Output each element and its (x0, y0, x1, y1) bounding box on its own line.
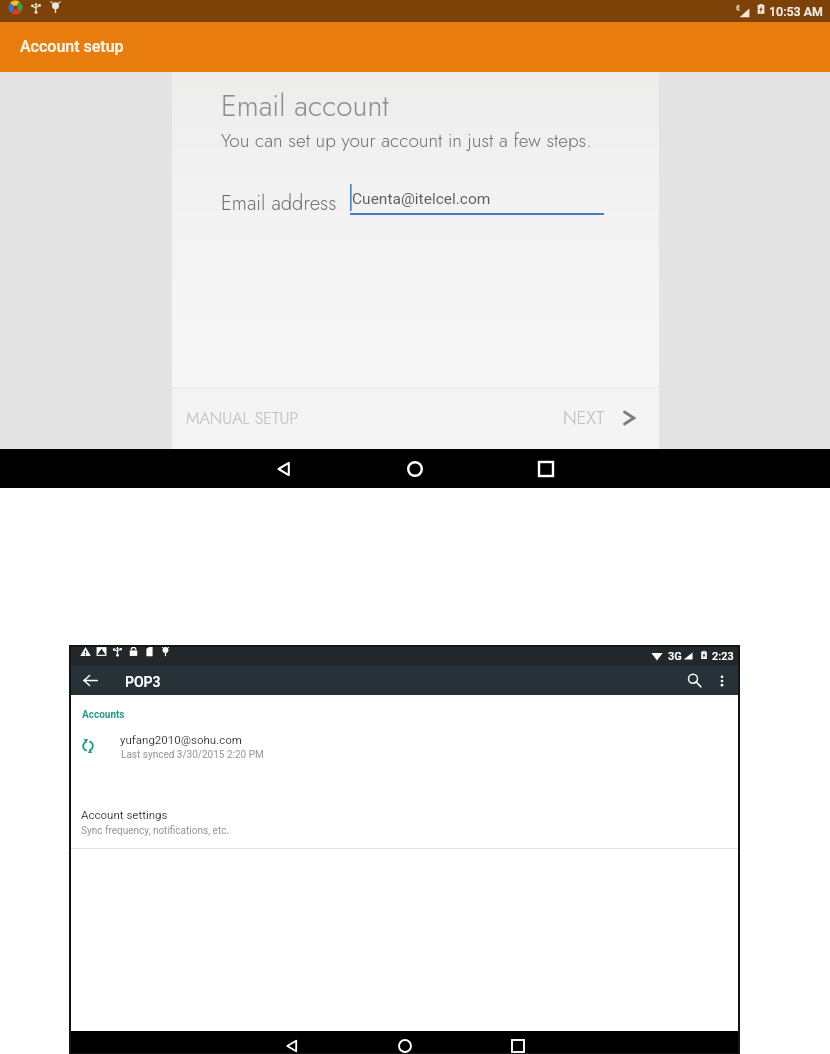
staticText: Account setup (20, 37, 124, 56)
button[interactable]: Back (76, 666, 105, 695)
staticText: 2:23 (712, 650, 734, 663)
staticText: Email account (221, 84, 389, 127)
staticText: Last synced 3/30/2015 2:20 PM (121, 749, 264, 761)
staticText: NEXT (563, 405, 605, 431)
staticText: POP3 (125, 674, 161, 690)
button[interactable]: Search (680, 666, 709, 695)
staticText: Account settings (81, 808, 168, 821)
button[interactable]: yufang2010@sohu.com (70, 721, 739, 763)
button[interactable]: NEXT (553, 396, 647, 440)
button[interactable]: Back (264, 449, 304, 488)
button[interactable]: MANUAL SETUP (176, 397, 308, 439)
staticText: Accounts (82, 709, 125, 721)
button[interactable]: Home (390, 1035, 420, 1054)
button[interactable]: Home (395, 449, 435, 488)
button[interactable]: Account setup (0, 22, 830, 72)
staticText: 3G (668, 650, 682, 663)
staticText: MANUAL SETUP (186, 406, 298, 430)
staticText: Sync frequency, notifications, etc. (81, 825, 230, 837)
button[interactable]: Recent apps (526, 449, 566, 488)
staticText: yufang2010@sohu.com (120, 733, 242, 746)
staticText: Cuenta@itelcel.com (352, 190, 491, 208)
button[interactable]: More options (707, 666, 736, 695)
staticText: Email address (221, 188, 337, 217)
button[interactable]: Recent apps (503, 1035, 533, 1054)
staticText: 10:53 AM (769, 4, 824, 19)
button[interactable]: Account settings (70, 795, 739, 841)
button[interactable]: Cuenta@itelcel.com (350, 182, 604, 215)
staticText: You can set up your account in just a fe… (221, 127, 592, 154)
button[interactable]: Back (277, 1035, 307, 1054)
